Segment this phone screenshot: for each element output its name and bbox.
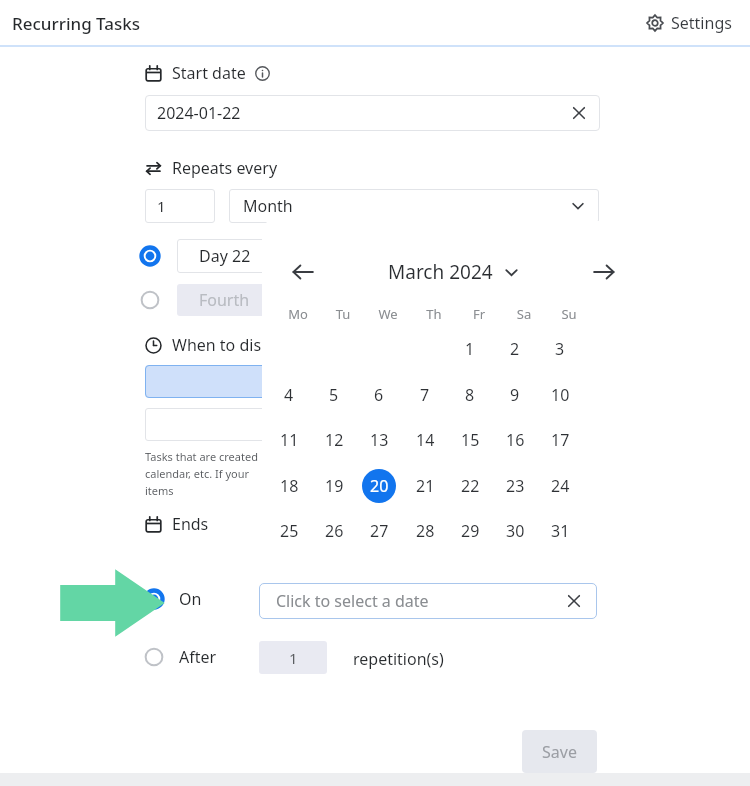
staticText: Month (243, 195, 293, 217)
button[interactable]: After (143, 646, 217, 668)
staticText: 6 (374, 384, 384, 406)
button[interactable]: Save (522, 730, 597, 773)
staticText: 2 (510, 338, 520, 360)
button[interactable]: Day 22 (145, 239, 477, 273)
button[interactable]: 29 (453, 514, 487, 548)
staticText: Ends (172, 513, 209, 535)
button[interactable]: 19 (317, 469, 351, 503)
button[interactable]: Clear end date (567, 594, 581, 608)
staticText: We (371, 305, 405, 323)
staticText: March 2024 (388, 259, 493, 285)
button[interactable]: 20 (362, 469, 396, 503)
staticText: 5 (329, 384, 339, 406)
staticText: Start date (172, 62, 246, 84)
staticText: 22 (461, 475, 480, 497)
staticText: 19 (325, 475, 344, 497)
button[interactable]: 15 (453, 423, 487, 457)
button[interactable]: 1 (453, 332, 487, 366)
button[interactable]: 22 (453, 469, 487, 503)
button[interactable]: 12 (317, 423, 351, 457)
staticText: calendar, etc. If your (145, 466, 250, 481)
button[interactable]: 26 (317, 514, 351, 548)
button[interactable]: Next month (591, 259, 617, 285)
button[interactable]: Settings (642, 8, 736, 38)
button[interactable]: 2 (498, 332, 532, 366)
staticText: 9 (510, 384, 520, 406)
staticText: 20 (370, 475, 389, 497)
staticText: repetition(s) (353, 648, 444, 670)
staticText: Day 22 (199, 245, 251, 267)
button[interactable]: 7 (408, 378, 442, 412)
staticText: 1 (157, 196, 166, 216)
staticText: 4 (284, 384, 294, 406)
button[interactable]: 4 (272, 378, 306, 412)
staticText: 31 (551, 520, 570, 542)
staticText: Su (552, 305, 586, 323)
button[interactable]: 25 (272, 514, 306, 548)
button[interactable]: 11 (272, 423, 306, 457)
staticText: 11 (280, 429, 299, 451)
staticText: 17 (551, 429, 570, 451)
button[interactable]: March 2024 (388, 259, 519, 285)
staticText: 18 (280, 475, 299, 497)
button[interactable]: 30 (498, 514, 532, 548)
staticText: 1 (289, 648, 298, 668)
button[interactable]: 8 (453, 378, 487, 412)
staticText: 1 (465, 338, 475, 360)
staticText: Mo (281, 305, 315, 323)
staticText: 15 (461, 429, 480, 451)
staticText: 10 (551, 384, 570, 406)
button[interactable]: 28 (408, 514, 442, 548)
button[interactable]: 9 (498, 378, 532, 412)
button[interactable]: 14 (408, 423, 442, 457)
staticText: 27 (370, 520, 389, 542)
staticText: 8 (465, 384, 475, 406)
staticText: 30 (506, 520, 525, 542)
staticText: Save (542, 741, 577, 763)
button[interactable]: 27 (362, 514, 396, 548)
staticText: On (179, 588, 202, 610)
button[interactable]: On the d (145, 408, 465, 441)
staticText: 23 (506, 475, 525, 497)
staticText: 2024-01-22 (157, 102, 241, 124)
button[interactable]: Click to select a date (259, 583, 597, 619)
staticText: items (145, 483, 174, 498)
staticText: When to display (172, 334, 293, 356)
button[interactable]: Previous month (290, 259, 316, 285)
button[interactable]: 13 (362, 423, 396, 457)
button[interactable]: D (145, 365, 465, 398)
staticText: After (179, 646, 217, 668)
staticText: 7 (420, 384, 430, 406)
button[interactable]: 31 (543, 514, 577, 548)
button[interactable]: 1 (145, 189, 215, 223)
button[interactable]: 5 (317, 378, 351, 412)
staticText: Tasks that are created (145, 449, 258, 464)
staticText: Th (417, 305, 451, 323)
staticText: On the d (272, 414, 338, 436)
staticText: 21 (416, 475, 435, 497)
button[interactable]: 6 (362, 378, 396, 412)
button[interactable]: Month (229, 189, 599, 223)
button[interactable]: On (143, 588, 202, 610)
button[interactable]: 23 (498, 469, 532, 503)
staticText: 25 (280, 520, 299, 542)
button[interactable]: 16 (498, 423, 532, 457)
button[interactable]: 21 (408, 469, 442, 503)
button[interactable]: 2024-01-22 (145, 95, 600, 131)
button[interactable]: 3 (543, 332, 577, 366)
button[interactable]: Clear start date (572, 106, 586, 120)
staticText: Settings (671, 12, 732, 34)
staticText: Click to select a date (276, 590, 429, 612)
staticText: 28 (416, 520, 435, 542)
button[interactable]: 18 (272, 469, 306, 503)
staticText: Recurring Tasks (12, 12, 141, 35)
staticText: 26 (325, 520, 344, 542)
staticText: 3 (555, 338, 565, 360)
button[interactable]: 17 (543, 423, 577, 457)
staticText: Fourth (199, 289, 250, 311)
button[interactable]: 24 (543, 469, 577, 503)
button[interactable]: Fourth (145, 284, 477, 316)
button[interactable]: 1 (259, 641, 327, 674)
button[interactable]: 10 (543, 378, 577, 412)
